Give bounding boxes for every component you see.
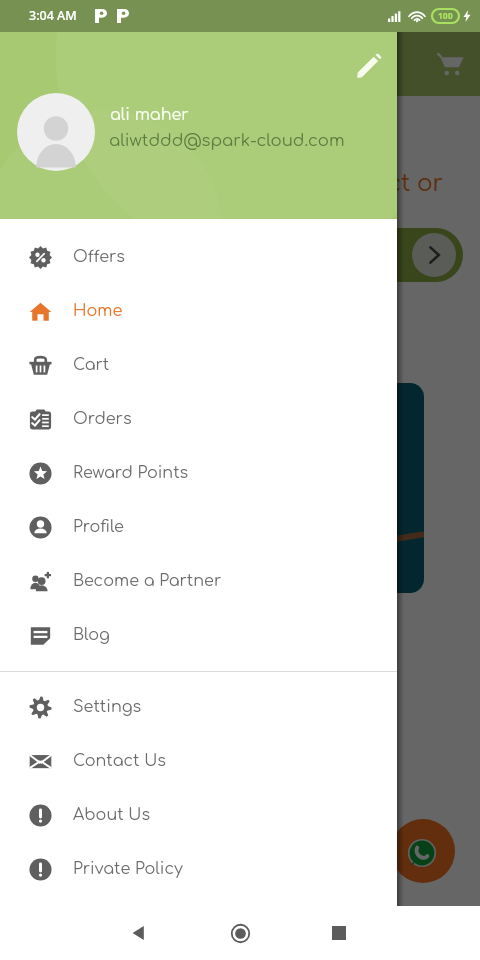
button[interactable]: Orders [0,392,397,446]
staticText: Private Policy [73,860,183,878]
button[interactable] [345,228,463,282]
button[interactable]: Home [0,284,397,338]
staticText: Search for your favourite product or [9,171,444,197]
staticText: 3:04 AM [29,7,77,24]
button[interactable]: Offers [0,230,397,284]
button[interactable]: Blog [0,608,397,662]
button[interactable]: WhatsApp [391,819,455,883]
button[interactable]: Back [117,911,161,955]
button[interactable]: Cart [0,338,397,392]
staticText: Contact Us [73,752,166,770]
button[interactable]: About Us [0,788,397,842]
staticText: 100 [438,10,453,22]
button[interactable]: Home [218,911,262,955]
staticText: Home [73,302,123,320]
staticText: Cart [73,356,110,374]
staticText: Offers [73,248,125,266]
staticText: Profile [73,518,124,536]
button[interactable]: Private Policy [0,842,397,896]
staticText: Blog [73,626,110,644]
staticText: About Us [73,806,151,824]
staticText: aliwtddd@spark-cloud.com [109,131,345,149]
button[interactable]: Contact Us [0,734,397,788]
button[interactable]: Edit profile [345,42,393,90]
button[interactable]: Cart [436,49,466,79]
staticText: Become a Partner [73,572,222,590]
staticText: Reward Points [73,464,189,482]
staticText: ali maher [110,106,189,124]
button[interactable]: Settings [0,680,397,734]
button[interactable]: Become a Partner [0,554,397,608]
staticText: Orders [73,410,132,428]
staticText: Settings [73,698,142,716]
button[interactable]: Reward Points [0,446,397,500]
button[interactable]: Recents [317,911,361,955]
button[interactable]: Profile [0,500,397,554]
